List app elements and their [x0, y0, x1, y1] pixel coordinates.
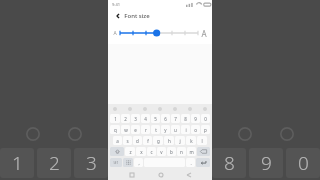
button[interactable]: Recents: [127, 170, 136, 179]
button[interactable]: z: [125, 147, 135, 156]
button[interactable]: r: [141, 125, 150, 134]
button[interactable]: 0: [201, 114, 210, 123]
button[interactable]: 3: [74, 148, 108, 178]
button[interactable]: [113, 107, 117, 111]
button[interactable]: p: [201, 125, 210, 134]
button[interactable]: e: [131, 125, 140, 134]
button[interactable]: 9: [191, 114, 200, 123]
button[interactable]: f: [143, 136, 152, 145]
staticText: m: [189, 149, 194, 155]
button[interactable]: q: [110, 125, 120, 134]
button[interactable]: g: [153, 136, 163, 145]
staticText: j: [179, 138, 181, 144]
button[interactable]: m: [187, 147, 196, 156]
button[interactable]: k: [186, 136, 196, 145]
button[interactable]: [128, 107, 132, 111]
staticText: 1: [114, 116, 117, 122]
button[interactable]: l: [197, 136, 207, 145]
staticText: 0: [298, 150, 309, 176]
button[interactable]: j: [175, 136, 185, 145]
staticText: p: [204, 127, 207, 133]
button[interactable]: Emoji: [123, 158, 133, 167]
button[interactable]: s: [123, 136, 132, 145]
staticText: o: [194, 127, 197, 133]
staticText: 9: [261, 150, 272, 176]
button[interactable]: t: [151, 125, 160, 134]
button[interactable]: w: [121, 125, 130, 134]
button[interactable]: 2: [121, 114, 130, 123]
staticText: n: [180, 149, 183, 155]
staticText: A: [201, 28, 207, 39]
button[interactable]: y: [161, 125, 170, 134]
staticText: s: [126, 138, 129, 144]
button[interactable]: 8: [212, 148, 246, 178]
button[interactable]: 2: [37, 148, 71, 178]
staticText: r: [145, 127, 147, 133]
button[interactable]: v: [157, 147, 166, 156]
staticText: !#1: [113, 160, 119, 165]
button[interactable]: x: [136, 147, 146, 156]
button[interactable]: Back: [112, 10, 123, 21]
staticText: c: [150, 149, 153, 155]
button[interactable]: h: [164, 136, 174, 145]
button[interactable]: o: [191, 125, 200, 134]
staticText: 4: [144, 116, 147, 122]
button[interactable]: Shift: [110, 147, 124, 156]
staticText: 9:41: [112, 2, 120, 7]
button[interactable]: 7: [171, 114, 180, 123]
staticText: 8: [224, 150, 235, 176]
button[interactable]: a: [113, 136, 122, 145]
button[interactable]: Home: [156, 170, 165, 179]
button[interactable]: [188, 107, 192, 111]
button[interactable]: 4: [141, 114, 150, 123]
staticText: e: [134, 127, 137, 133]
button[interactable]: [143, 107, 147, 111]
button[interactable]: d: [133, 136, 142, 145]
staticText: 2: [124, 116, 127, 122]
button[interactable]: Enter: [196, 158, 210, 167]
button[interactable]: Back: [184, 170, 193, 179]
button[interactable]: 0: [286, 148, 320, 178]
button[interactable]: Symbols: [110, 158, 122, 167]
button[interactable]: A: [108, 22, 212, 44]
button[interactable]: 6: [161, 114, 170, 123]
button[interactable]: [173, 107, 177, 111]
staticText: x: [140, 149, 143, 155]
staticText: g: [157, 138, 160, 144]
staticText: ,: [138, 160, 140, 166]
staticText: 3: [134, 116, 137, 122]
staticText: 3: [86, 150, 97, 176]
staticText: i: [185, 127, 187, 133]
button[interactable]: n: [177, 147, 186, 156]
button[interactable]: b: [167, 147, 176, 156]
staticText: q: [114, 127, 117, 133]
button[interactable]: [158, 107, 162, 111]
button[interactable]: 1: [0, 148, 34, 178]
button[interactable]: ,: [134, 158, 143, 167]
button[interactable]: c: [147, 147, 156, 156]
button[interactable]: .: [186, 158, 195, 167]
staticText: k: [190, 138, 193, 144]
button[interactable]: i: [181, 125, 190, 134]
button[interactable]: 1: [110, 114, 120, 123]
button[interactable]: [203, 107, 207, 111]
staticText: Font size: [124, 12, 150, 20]
staticText: 5: [154, 116, 157, 122]
staticText: a: [116, 138, 119, 144]
staticText: 2: [49, 150, 60, 176]
staticText: z: [129, 149, 132, 155]
button[interactable]: Backspace: [197, 147, 210, 156]
staticText: u: [174, 127, 177, 133]
staticText: 9: [194, 116, 197, 122]
button[interactable]: 3: [131, 114, 140, 123]
button[interactable]: u: [171, 125, 180, 134]
button[interactable]: 5: [151, 114, 160, 123]
staticText: 8: [184, 116, 187, 122]
button[interactable]: 9: [249, 148, 283, 178]
button[interactable]: 8: [181, 114, 190, 123]
staticText: t: [155, 127, 157, 133]
staticText: .: [190, 160, 192, 166]
staticText: d: [136, 138, 139, 144]
staticText: l: [201, 138, 203, 144]
